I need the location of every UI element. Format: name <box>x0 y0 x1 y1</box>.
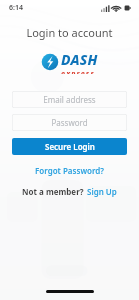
staticText: Forgot Password? <box>35 165 104 176</box>
staticText: Email address <box>43 94 96 105</box>
staticText: 6:14 <box>9 3 23 13</box>
button[interactable]: Sign Up <box>87 186 117 197</box>
button[interactable]: Secure Login <box>12 138 127 155</box>
staticText: Sign Up <box>87 186 117 197</box>
staticText: express <box>61 69 96 74</box>
button[interactable]: Forgot Password? <box>0 165 139 176</box>
staticText: Secure Login <box>45 141 95 152</box>
staticText: Password <box>51 117 88 128</box>
staticText: DASH <box>61 50 98 69</box>
button[interactable]: Email address <box>12 91 127 108</box>
button[interactable]: Password <box>12 114 127 131</box>
staticText: Not a member? <box>22 186 84 197</box>
staticText: Login to account <box>0 25 139 40</box>
